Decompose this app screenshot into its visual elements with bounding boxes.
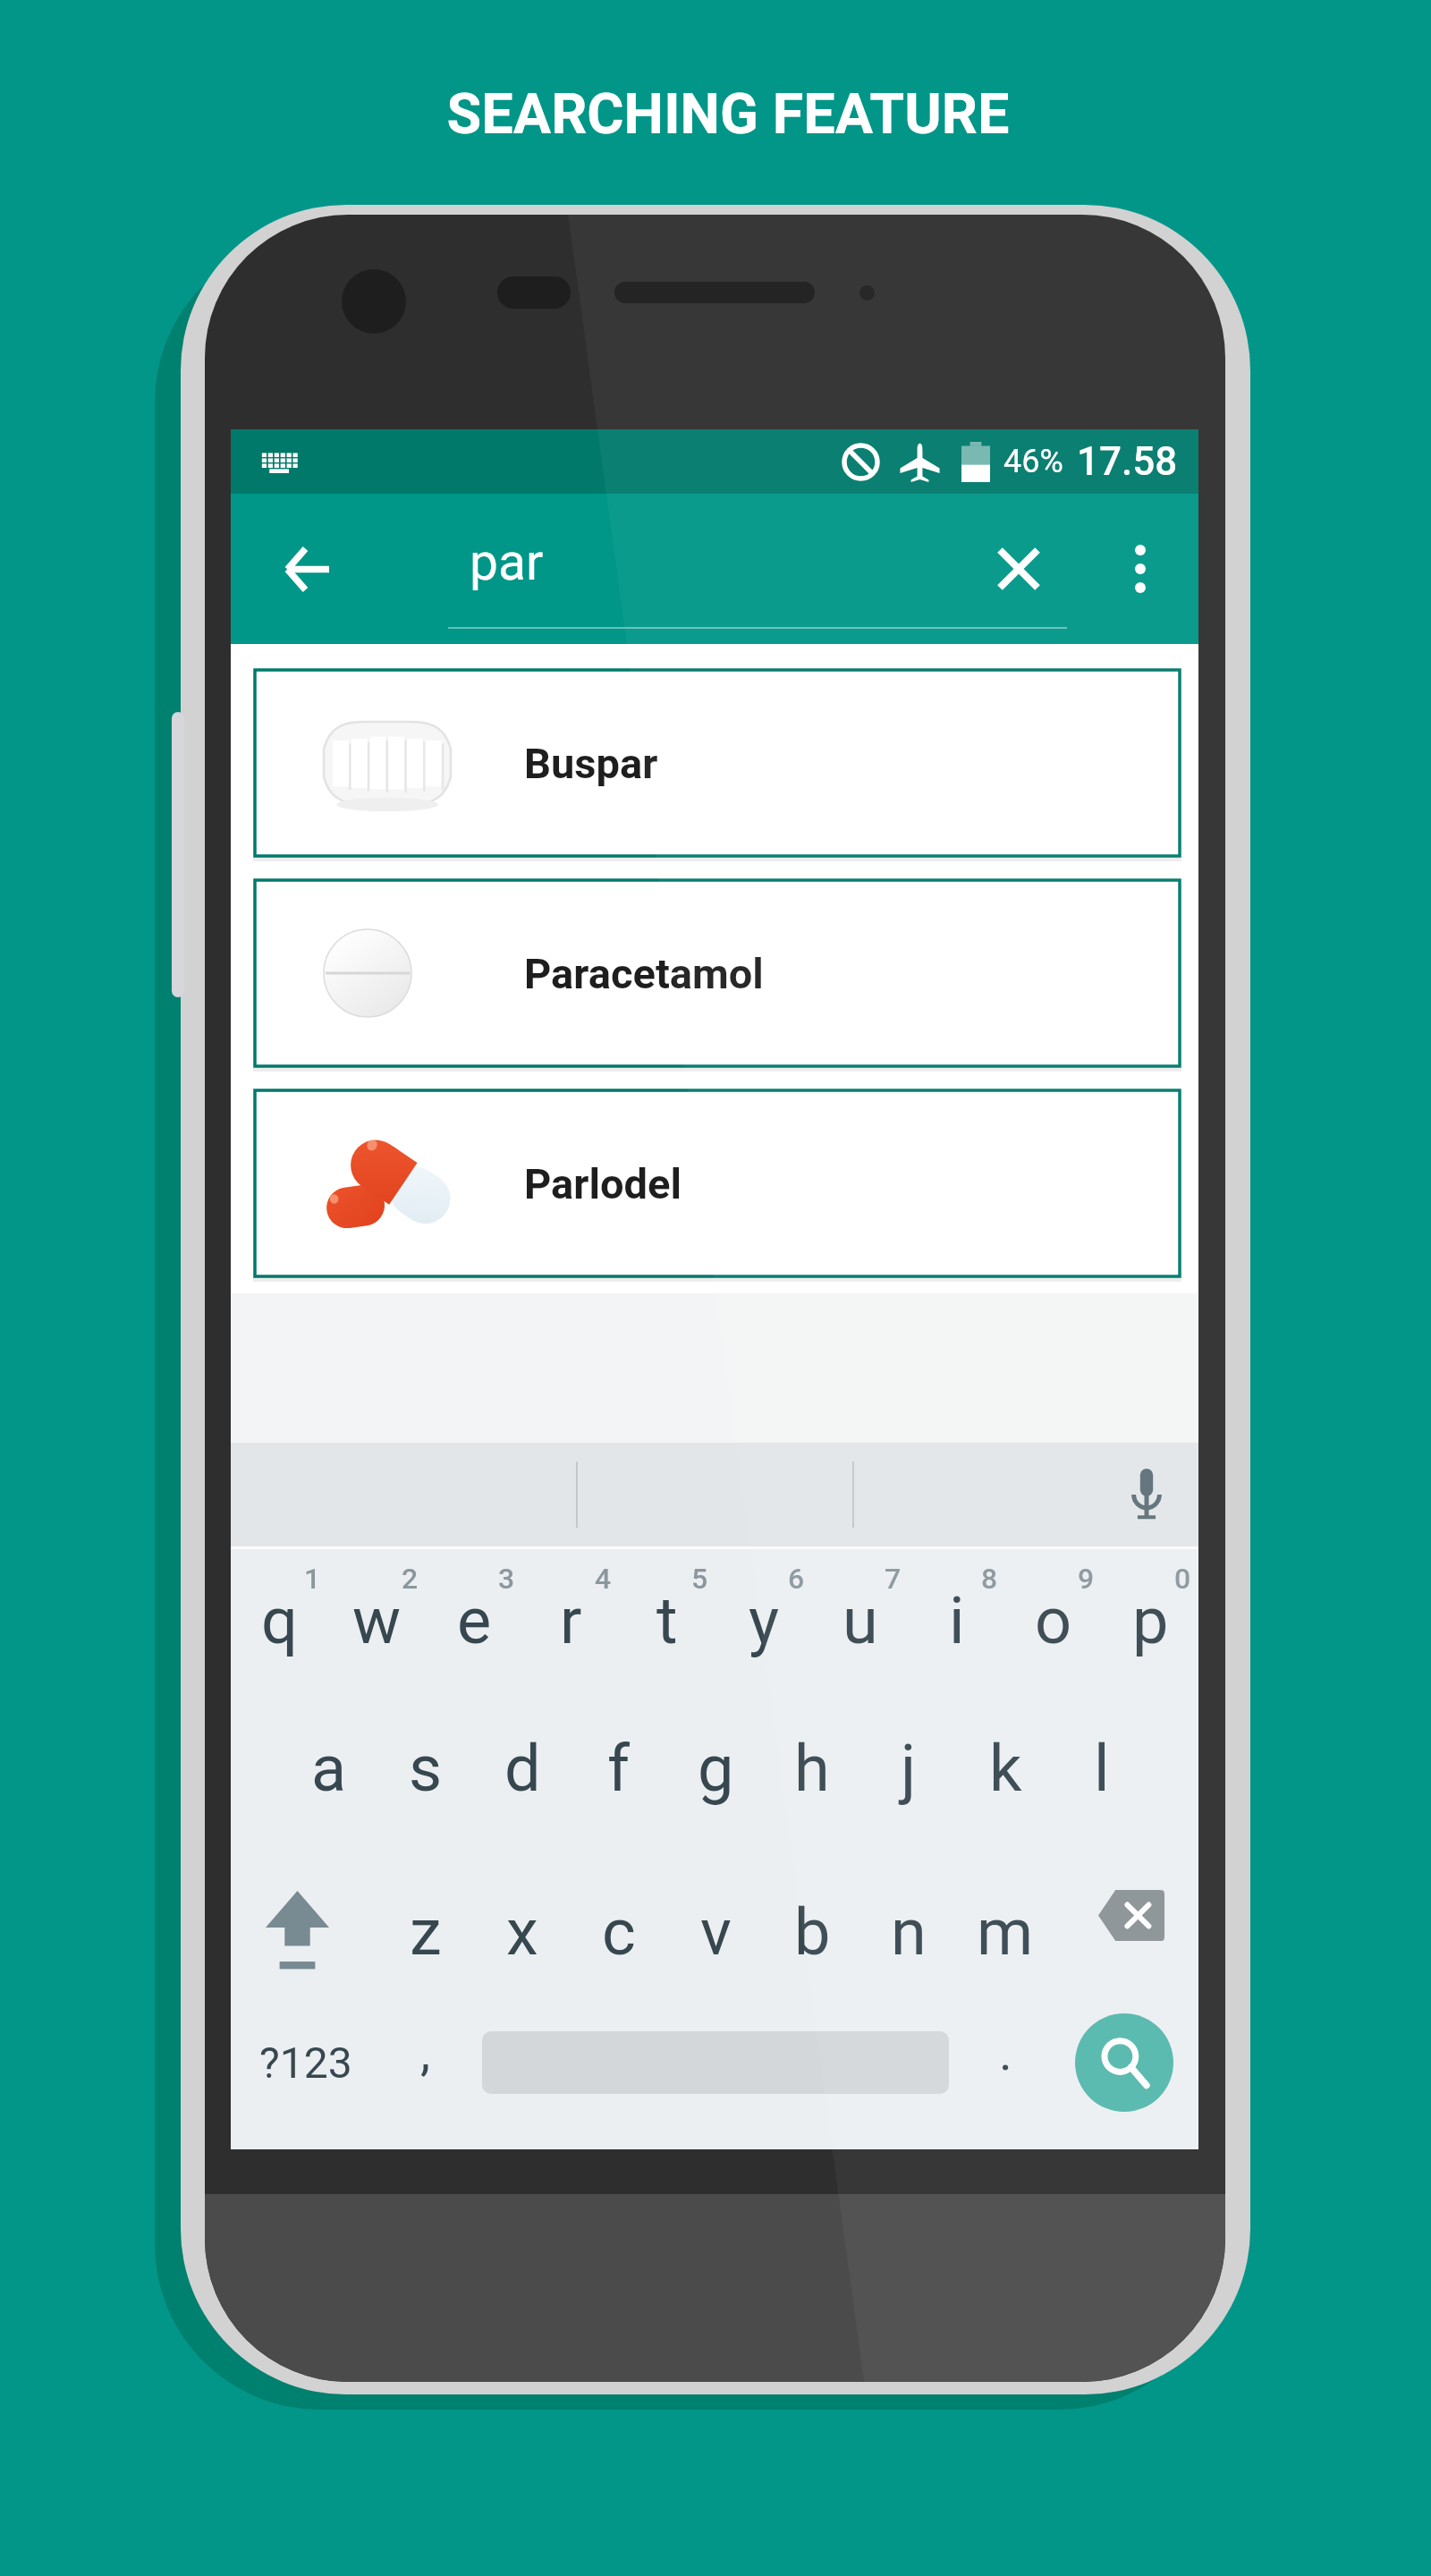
button[interactable]: s (377, 1697, 474, 1840)
button[interactable]: 9 (1005, 1553, 1102, 1696)
button[interactable]: x (474, 1860, 571, 2004)
button[interactable]: More options (1091, 520, 1190, 618)
staticText: 2 (402, 1562, 419, 1596)
staticText: y (749, 1583, 780, 1658)
button[interactable]: Paracetamol (255, 880, 1180, 1066)
staticText: 46% (1003, 443, 1063, 480)
staticText: x (506, 1894, 538, 1970)
staticText: j (901, 1731, 917, 1806)
staticText: par (470, 532, 544, 592)
button[interactable]: z (377, 1860, 474, 2004)
staticText: 8 (981, 1562, 998, 1596)
button[interactable]: Space (470, 1991, 961, 2134)
staticText: 4 (595, 1562, 612, 1596)
staticText: 3 (498, 1562, 515, 1596)
staticText: d (504, 1731, 541, 1806)
staticText: Paracetamol (524, 949, 764, 998)
staticText: s (409, 1731, 443, 1806)
button[interactable]: Search (1050, 1991, 1198, 2134)
button[interactable]: b (764, 1860, 860, 2004)
staticText: z (410, 1894, 442, 1970)
button[interactable]: 2 (328, 1553, 426, 1696)
staticText: 0 (1174, 1562, 1191, 1596)
staticText: 17.58 (1077, 438, 1178, 485)
button[interactable]: v (667, 1860, 764, 2004)
button[interactable]: g (667, 1697, 764, 1840)
staticText: q (261, 1583, 298, 1658)
staticText: Buspar (524, 739, 658, 788)
staticText: t (656, 1583, 678, 1658)
button[interactable]: 3 (426, 1553, 522, 1696)
button[interactable]: , (381, 1991, 470, 2134)
button[interactable]: 7 (812, 1553, 909, 1696)
staticText: k (989, 1731, 1022, 1806)
staticText: 5 (691, 1562, 708, 1596)
staticText: w (352, 1583, 402, 1658)
staticText: ?123 (259, 2038, 352, 2088)
staticText: u (843, 1583, 878, 1658)
button[interactable]: a (280, 1697, 377, 1840)
staticText: 6 (788, 1562, 805, 1596)
staticText: , (420, 2023, 431, 2082)
staticText: SEARCHING FEATURE (13, 81, 1431, 148)
staticText: 9 (1078, 1562, 1095, 1596)
button[interactable]: Buspar (255, 670, 1180, 856)
button[interactable]: h (764, 1697, 860, 1840)
button[interactable]: j (860, 1697, 957, 1840)
staticText: . (999, 2023, 1012, 2082)
button[interactable]: Voice input (1119, 1466, 1174, 1521)
staticText: g (698, 1731, 734, 1806)
button[interactable]: ?123 (243, 1991, 368, 2134)
button[interactable]: Clear search (970, 520, 1068, 618)
staticText: l (1094, 1731, 1110, 1806)
staticText: f (607, 1731, 631, 1806)
staticText: Parlodel (524, 1159, 682, 1208)
button[interactable]: Shift (231, 1860, 377, 2004)
button[interactable]: 1 (231, 1553, 328, 1696)
staticText: v (700, 1894, 732, 1970)
staticText: h (794, 1731, 830, 1806)
button[interactable]: 4 (522, 1553, 619, 1696)
staticText: 7 (885, 1562, 902, 1596)
button[interactable]: f (571, 1697, 667, 1840)
staticText: i (949, 1583, 965, 1658)
staticText: m (977, 1894, 1034, 1970)
button[interactable]: Back (258, 520, 356, 618)
staticText: b (794, 1894, 831, 1970)
button[interactable]: l (1054, 1697, 1150, 1840)
staticText: n (891, 1894, 927, 1970)
button[interactable]: n (860, 1860, 957, 2004)
staticText: 1 (304, 1562, 321, 1596)
button[interactable]: c (571, 1860, 667, 2004)
button[interactable]: 8 (909, 1553, 1005, 1696)
button[interactable]: d (474, 1697, 571, 1840)
button[interactable]: . (961, 1991, 1050, 2134)
button[interactable]: m (957, 1860, 1054, 2004)
staticText: p (1132, 1583, 1169, 1658)
button[interactable]: 5 (619, 1553, 715, 1696)
staticText: o (1035, 1583, 1072, 1658)
button[interactable]: k (957, 1697, 1054, 1840)
button[interactable]: Parlodel (255, 1090, 1180, 1276)
staticText: e (457, 1583, 492, 1658)
staticText: c (602, 1894, 636, 1970)
button[interactable]: 0 (1102, 1553, 1198, 1696)
staticText: a (311, 1731, 347, 1806)
staticText: r (560, 1583, 582, 1658)
button[interactable]: 6 (715, 1553, 812, 1696)
button[interactable]: Backspace (1054, 1860, 1198, 2004)
